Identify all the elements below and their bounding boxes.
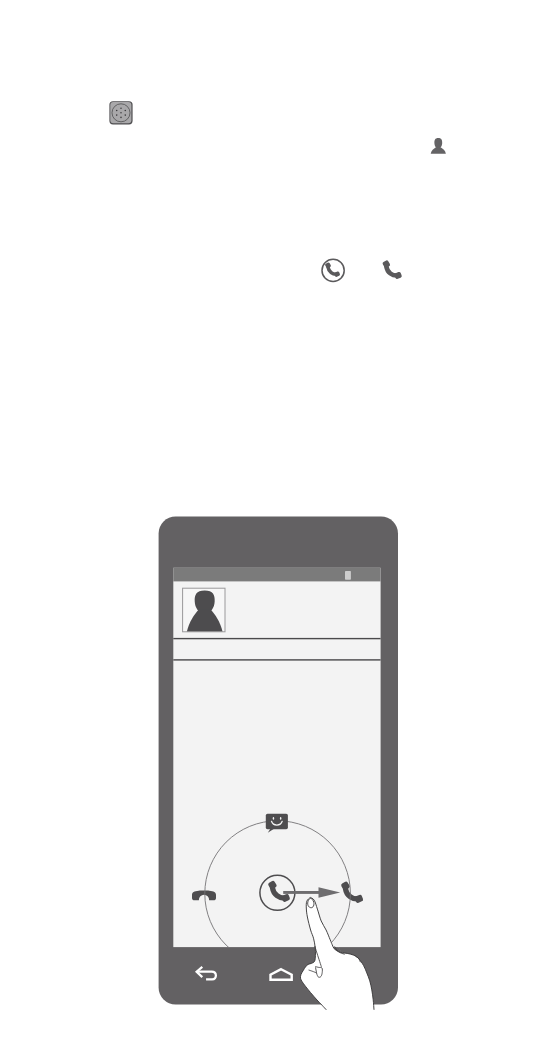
button[interactable]: Call (383, 261, 401, 279)
button[interactable]: Answer call (322, 259, 344, 281)
button[interactable]: Contact (428, 137, 448, 157)
other: Swipe the call icon right to answer (158, 516, 397, 1009)
button[interactable]: Dial pad (109, 101, 132, 124)
